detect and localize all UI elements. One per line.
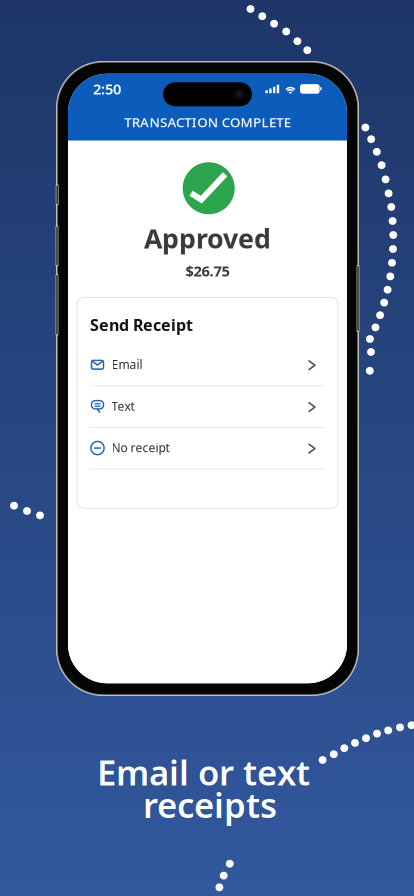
staticText: TRANSACTION COMPLETE bbox=[124, 113, 291, 131]
button[interactable]: Email bbox=[77, 344, 338, 386]
staticText: Text bbox=[111, 398, 134, 414]
staticText: $26.75 bbox=[185, 261, 229, 280]
staticText: 2:50 bbox=[93, 79, 121, 98]
staticText: Approved bbox=[144, 220, 271, 256]
staticText: No receipt bbox=[111, 440, 169, 455]
staticText: receipts bbox=[143, 781, 277, 827]
staticText: Email bbox=[111, 356, 142, 372]
staticText: Email or text bbox=[97, 749, 310, 795]
button[interactable]: No receipt bbox=[77, 428, 338, 470]
staticText: Send Receipt bbox=[90, 314, 193, 335]
button[interactable]: Text bbox=[77, 386, 338, 428]
